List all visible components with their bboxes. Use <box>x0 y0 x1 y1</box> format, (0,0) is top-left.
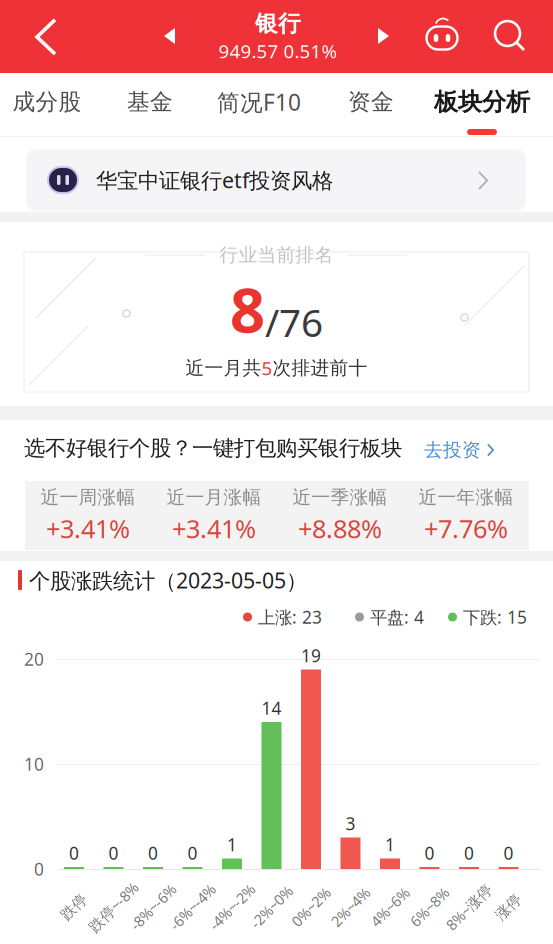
staticText: 0 <box>69 841 79 864</box>
staticText: 0 <box>148 841 158 864</box>
staticText: 资金 <box>348 88 394 116</box>
staticText: 0 <box>187 841 197 864</box>
button[interactable]: 返回 <box>0 0 72 73</box>
staticText: 0 <box>424 841 434 864</box>
button[interactable]: 华宝中证银行etf投资风格 <box>26 149 526 211</box>
staticText: 下跌: 15 <box>463 605 527 628</box>
staticText: 2%~4% <box>326 897 374 917</box>
staticText: 近一月涨幅 <box>166 486 261 509</box>
staticText: -2%~0% <box>245 897 298 917</box>
staticText: -8%~-6% <box>124 897 182 917</box>
staticText: 平盘: 4 <box>370 605 424 628</box>
button[interactable]: 搜索 <box>480 0 540 73</box>
staticText: 华宝中证银行etf投资风格 <box>96 166 333 194</box>
button[interactable]: 去投资 <box>424 436 494 464</box>
staticText: 选不好银行个股？一键打包购买银行板块 <box>24 435 402 461</box>
staticText: 板块分析 <box>434 87 530 117</box>
staticText: 20 <box>24 647 44 670</box>
staticText: 6%~8% <box>405 897 453 917</box>
staticText: /76 <box>265 296 323 348</box>
staticText: 行业当前排名 <box>219 243 333 266</box>
staticText: 949.57 0.51% <box>218 38 337 63</box>
staticText: 次排进前十 <box>272 356 367 379</box>
staticText: 4%~6% <box>366 897 414 917</box>
staticText: 银行 <box>255 10 301 37</box>
staticText: 8 <box>230 268 265 350</box>
staticText: 10 <box>24 752 44 775</box>
staticText: 近一年涨幅 <box>418 486 513 509</box>
staticText: 0 <box>108 841 118 864</box>
staticText: 1 <box>385 833 395 856</box>
staticText: 0%~2% <box>287 897 335 917</box>
staticText: -6%~-4% <box>163 897 221 917</box>
staticText: 近一季涨幅 <box>292 486 387 509</box>
staticText: 14 <box>261 696 281 719</box>
staticText: -4%~-2% <box>203 897 261 917</box>
staticText: 成分股 <box>12 88 81 116</box>
staticText: 近一周涨幅 <box>40 486 135 509</box>
staticText: 8%~涨停 <box>440 897 498 917</box>
button[interactable]: 成分股 <box>0 73 97 136</box>
button[interactable]: 资金 <box>321 73 421 136</box>
button[interactable]: 基金 <box>100 73 200 136</box>
staticText: +7.76% <box>424 512 508 545</box>
staticText: +3.41% <box>172 512 256 545</box>
staticText: +3.41% <box>46 512 130 545</box>
staticText: 3 <box>345 812 355 835</box>
button[interactable]: 上一个 <box>146 0 192 73</box>
staticText: 0 <box>464 841 474 864</box>
staticText: 涨停 <box>493 898 523 916</box>
staticText: 跌停~-8% <box>82 897 145 917</box>
staticText: 0 <box>503 841 513 864</box>
staticText: 简况F10 <box>217 87 301 117</box>
staticText: +8.88% <box>298 512 382 545</box>
button[interactable]: 板块分析 <box>427 73 537 136</box>
button[interactable]: 下一个 <box>362 0 408 73</box>
staticText: 基金 <box>127 88 173 116</box>
button[interactable]: 智能助手 <box>412 0 470 73</box>
staticText: 跌停 <box>59 898 89 916</box>
staticText: 5 <box>261 356 272 380</box>
staticText: 上涨: 23 <box>258 605 322 628</box>
staticText: 个股涨跌统计（2023-05-05） <box>29 566 307 594</box>
staticText: 19 <box>301 644 321 667</box>
staticText: 1 <box>227 833 237 856</box>
staticText: 去投资 <box>424 438 481 461</box>
staticText: 0 <box>34 857 44 880</box>
button[interactable]: 简况F10 <box>204 73 314 136</box>
staticText: 近一月共 <box>185 356 261 379</box>
